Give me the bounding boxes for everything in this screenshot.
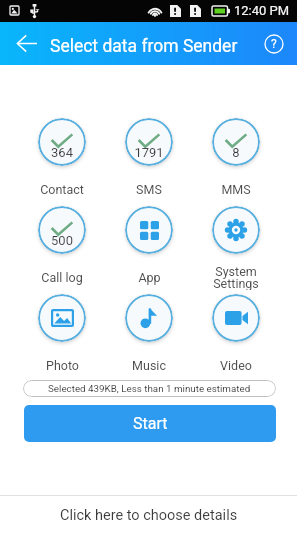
button[interactable]: Help [253,23,294,64]
button[interactable]: 364 [18,114,106,214]
staticText: MMS [221,182,251,197]
staticText: Selected 439KB, Less than 1 minute estim… [48,383,251,394]
staticText: 8 [212,145,260,160]
staticText: Select data from Sender [50,36,238,57]
staticText: ? [271,37,277,51]
button[interactable]: Back [6,24,47,63]
button[interactable]: Click here to choose details [0,496,297,535]
staticText: 1791 [125,145,173,160]
button[interactable]: Music [105,290,193,390]
staticText: 12:40 PM [234,3,290,18]
button[interactable]: Video [192,290,280,390]
button[interactable]: Start [24,405,276,442]
staticText: Contact [40,182,84,197]
staticText: Call log [41,270,83,285]
button[interactable]: 8 [192,114,280,214]
staticText: Music [132,358,166,373]
staticText: SMS [136,182,162,197]
staticText: 364 [38,145,86,160]
button[interactable]: 500 [18,202,106,302]
staticText: Start [133,414,168,433]
button[interactable]: Photo [18,290,106,390]
button[interactable]: System Settings [192,202,280,302]
staticText: App [138,270,161,285]
staticText: System Settings [213,264,259,290]
staticText: 500 [38,233,86,248]
button[interactable]: App [105,202,193,302]
staticText: Video [220,358,252,373]
staticText: Click here to choose details [60,507,238,524]
staticText: Photo [46,358,79,373]
button[interactable]: Selected 439KB, Less than 1 minute estim… [23,380,276,397]
button[interactable]: 1791 [105,114,193,214]
